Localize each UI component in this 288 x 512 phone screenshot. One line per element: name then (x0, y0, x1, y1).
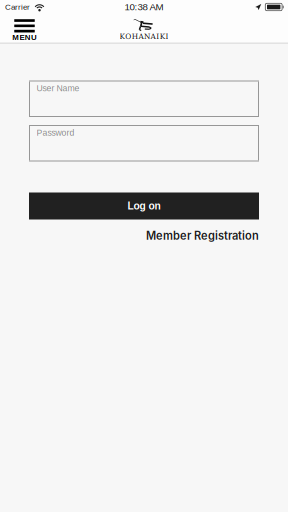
staticText: 10:38 AM (124, 2, 163, 12)
staticText: KOHANAIKI (120, 32, 168, 41)
staticText: Password (36, 128, 74, 137)
staticText: Log on (127, 200, 160, 212)
staticText: Member Registration (146, 229, 259, 242)
button[interactable]: Member Registration (146, 226, 259, 245)
button[interactable]: Menu (12, 14, 36, 43)
staticText: User Name (36, 83, 79, 93)
staticText: MENU (12, 33, 37, 42)
staticText: Carrier (5, 2, 30, 11)
button[interactable]: Log on (29, 192, 259, 219)
